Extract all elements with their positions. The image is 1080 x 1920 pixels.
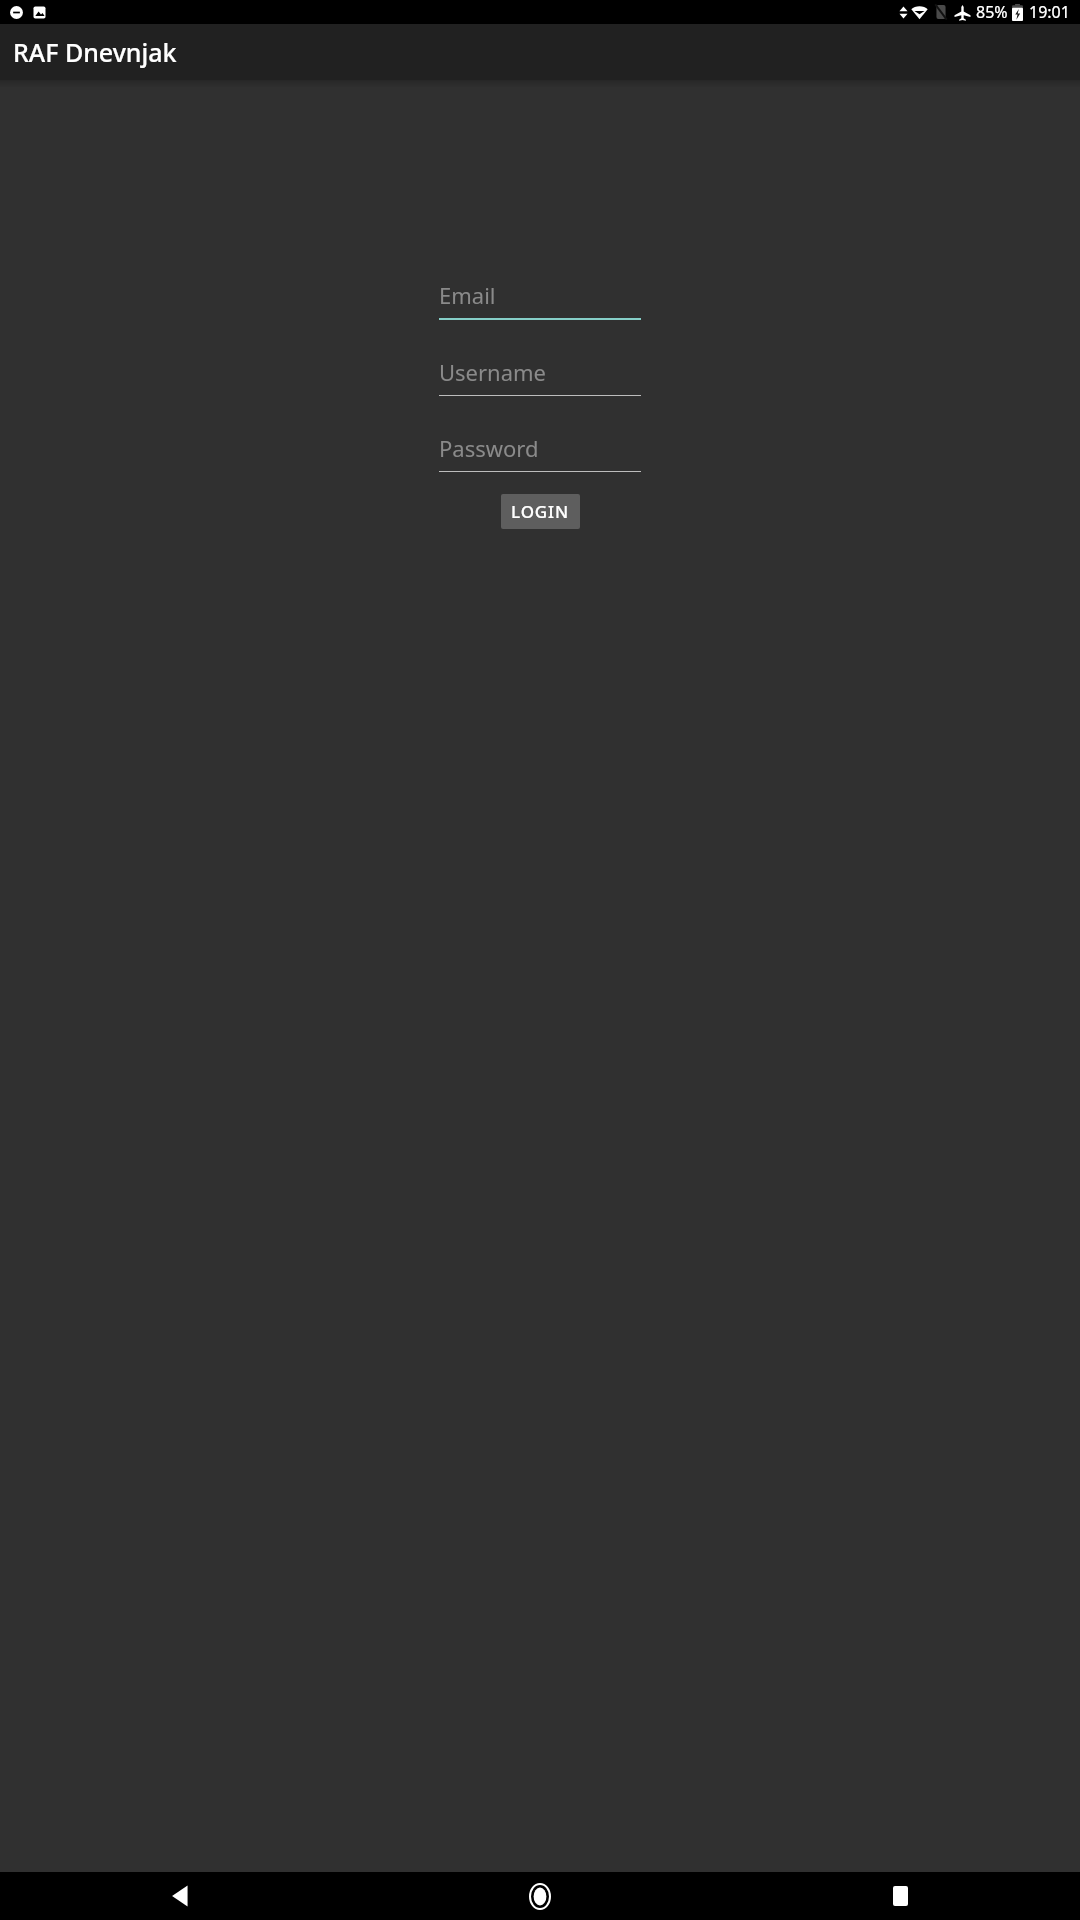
staticText: Username (439, 357, 547, 387)
button[interactable]: Email (439, 276, 641, 320)
staticText: 19:01 (1029, 1, 1070, 23)
staticText: 85% (976, 1, 1008, 23)
staticText: RAF Dnevnjak (13, 35, 177, 69)
button[interactable]: Back (0, 1872, 360, 1920)
button[interactable]: Password (439, 429, 641, 472)
button[interactable]: Recent apps (720, 1872, 1080, 1920)
staticText: Email (439, 280, 496, 310)
staticText: Password (439, 433, 539, 463)
button[interactable]: LOGIN (501, 494, 580, 529)
button[interactable]: Home (360, 1872, 720, 1920)
staticText: LOGIN (511, 500, 570, 523)
button[interactable]: Username (439, 353, 641, 396)
